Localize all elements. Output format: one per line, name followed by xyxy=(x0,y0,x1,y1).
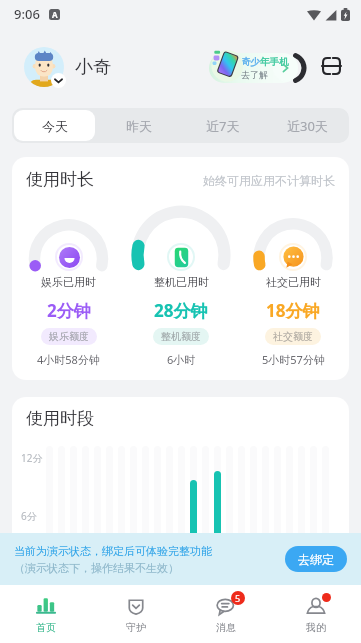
staticText: 去了解 xyxy=(241,69,268,80)
staticText: 6分 xyxy=(21,509,37,523)
staticText: 始终可用应用不计算时长 xyxy=(203,173,335,188)
staticText: 5小时57分钟 xyxy=(262,352,325,367)
staticText: 消息 xyxy=(216,621,236,634)
staticText: 28分钟 xyxy=(154,299,208,322)
staticText: 18分钟 xyxy=(266,299,320,322)
staticText: 去绑定 xyxy=(298,552,334,567)
staticText: 12分 xyxy=(21,451,43,465)
button[interactable]: 首页 xyxy=(0,585,91,643)
button[interactable]: 近30天 xyxy=(267,110,347,141)
staticText: 6小时 xyxy=(167,352,196,367)
staticText: 今天 xyxy=(42,118,68,134)
button[interactable]: 近7天 xyxy=(183,110,263,141)
staticText: 社交已用时 xyxy=(266,275,321,289)
staticText: 9:06 xyxy=(14,5,40,23)
staticText: 近7天 xyxy=(206,117,240,135)
button[interactable]: 昨天 xyxy=(99,110,179,141)
button[interactable]: 我的 xyxy=(271,585,361,643)
button[interactable]: Scan QR code xyxy=(320,55,342,77)
staticText: 社交额度 xyxy=(273,330,313,343)
staticText: 娱乐额度 xyxy=(49,330,89,343)
staticText: 整机额度 xyxy=(161,330,201,343)
staticText: 4小时58分钟 xyxy=(37,352,100,367)
staticText: 使用时段 xyxy=(26,408,94,429)
button[interactable]: 守护 xyxy=(91,585,181,643)
staticText: 2分钟 xyxy=(47,299,91,322)
button[interactable]: Switch child xyxy=(24,47,64,87)
button[interactable]: 今天 xyxy=(14,110,95,141)
button[interactable]: 去绑定 xyxy=(285,546,347,572)
staticText: 我的 xyxy=(306,621,326,634)
staticText: 使用时长 xyxy=(26,169,94,190)
button[interactable]: 5 xyxy=(181,585,271,643)
staticText: 年手机 xyxy=(260,56,289,68)
staticText: 昨天 xyxy=(126,118,152,134)
staticText: 奇少 xyxy=(241,56,260,68)
staticText: 守护 xyxy=(126,621,146,634)
staticText: 当前为演示状态，绑定后可体验完整功能 xyxy=(14,544,212,558)
staticText: 整机已用时 xyxy=(154,275,209,289)
staticText: 5 xyxy=(235,592,241,604)
staticText: A xyxy=(52,9,58,20)
button[interactable]: 奇少 xyxy=(209,53,298,83)
staticText: 近30天 xyxy=(287,117,328,135)
staticText: 首页 xyxy=(36,621,56,634)
staticText: 娱乐已用时 xyxy=(41,275,96,289)
staticText: （演示状态下，操作结果不生效） xyxy=(14,561,179,575)
staticText: 小奇 xyxy=(75,56,111,79)
